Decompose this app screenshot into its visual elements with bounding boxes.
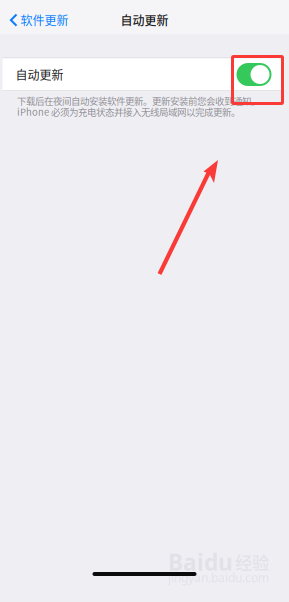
button[interactable]: 软件更新 [0,7,76,33]
staticText: 软件更新 [20,11,68,29]
staticText: 下载后在夜间自动安装软件更新。更新安装前您会收到通知。 [17,94,260,107]
staticText: 经验 [235,549,269,575]
staticText: 自动更新 [15,66,63,83]
staticText: jingyan.baidu.com [168,569,269,585]
staticText: iPhone 必须为充电状态并接入无线局域网以完成更新。 [17,105,240,118]
staticText: 自动更新 [120,11,168,29]
staticText: Baidu [168,547,233,577]
button[interactable]: 自动更新 [2,58,284,90]
